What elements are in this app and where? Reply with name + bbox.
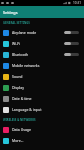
button[interactable]: Data Usage — [0, 124, 84, 135]
staticText: Language & input — [12, 107, 84, 112]
staticText: More... — [12, 138, 84, 143]
staticText: Bluetooth — [12, 52, 64, 57]
staticText: GENERAL SETTINGS — [3, 21, 30, 25]
button[interactable]: Wi-Fi — [0, 38, 84, 49]
button[interactable]: More... — [0, 135, 84, 146]
staticText: Sound — [12, 74, 84, 79]
button[interactable]: Airplane mode — [0, 27, 84, 38]
staticText: 10:31 — [73, 1, 82, 5]
button[interactable]: Toggle — [64, 42, 79, 45]
staticText: Airplane mode — [12, 30, 64, 35]
staticText: Data Usage — [12, 127, 84, 132]
staticText: Settings — [3, 10, 18, 15]
button[interactable]: Toggle — [64, 53, 79, 56]
button[interactable]: Display — [0, 82, 84, 93]
staticText: Date & time — [12, 96, 84, 101]
button[interactable]: Toggle — [64, 31, 79, 34]
button[interactable]: Language & input — [0, 104, 84, 115]
button[interactable]: Settings — [0, 6, 84, 18]
staticText: Wi-Fi — [12, 41, 64, 46]
staticText: WIRELESS & NETWORKS — [3, 118, 36, 122]
button[interactable]: Date & time — [0, 93, 84, 104]
staticText: Mobile networks — [12, 63, 84, 68]
button[interactable]: Mobile networks — [0, 60, 84, 71]
button[interactable]: Sound — [0, 71, 84, 82]
button[interactable]: Bluetooth — [0, 49, 84, 60]
staticText: Display — [12, 85, 84, 90]
